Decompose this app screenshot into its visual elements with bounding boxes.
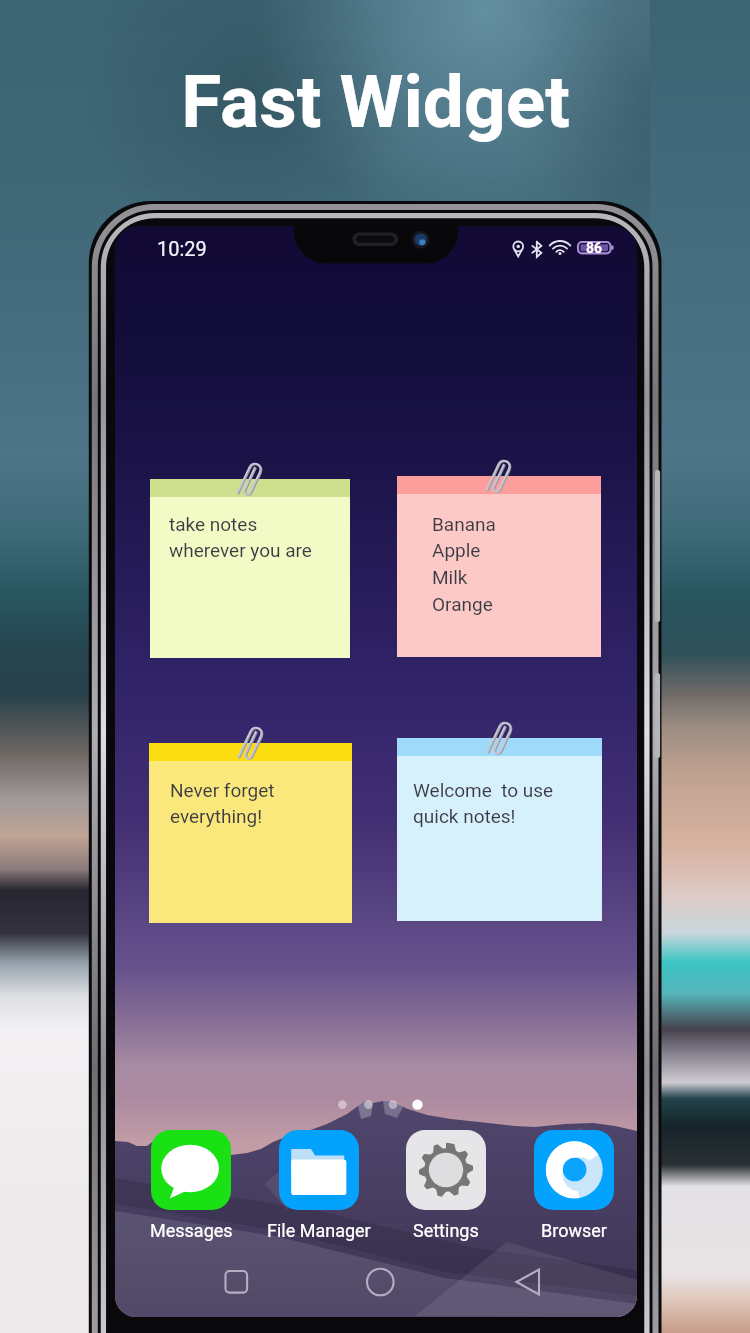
staticText: 86 [586,240,603,256]
staticText: take notes wherever you are [169,513,312,562]
button[interactable]: File Manager [257,1130,381,1242]
staticText: 10:29 [157,237,207,260]
staticText: Banana Apple Milk Orange [432,513,496,616]
staticText: Messages [150,1220,233,1241]
button[interactable]: Banana Apple Milk Orange [397,476,601,657]
staticText: Never forget everything! [170,779,275,828]
button[interactable]: Messages [129,1130,253,1242]
staticText: Browser [541,1220,607,1241]
staticText: Welcome to use quick notes! [413,779,554,828]
button[interactable]: Browser [512,1130,636,1242]
button[interactable]: take notes wherever you are [150,479,350,658]
staticText: File Manager [267,1220,371,1241]
button[interactable]: Settings [384,1130,508,1242]
staticText: Settings [413,1220,479,1241]
button[interactable]: Welcome to use quick notes! [397,738,602,921]
staticText: Fast Widget [181,59,570,145]
button[interactable]: Never forget everything! [149,743,352,923]
